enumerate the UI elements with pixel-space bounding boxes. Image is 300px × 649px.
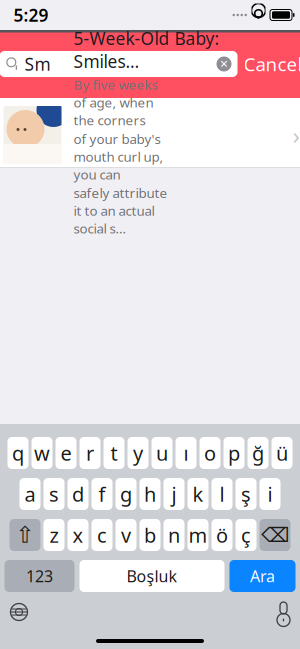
- button[interactable]: 123: [4, 560, 74, 592]
- staticText: a: [24, 481, 35, 507]
- button[interactable]: m: [187, 519, 208, 551]
- button[interactable]: ö: [211, 519, 232, 551]
- button[interactable]: i: [259, 478, 280, 510]
- button[interactable]: v: [115, 519, 136, 551]
- button[interactable]: t: [103, 437, 124, 469]
- button[interactable]: a: [19, 478, 40, 510]
- staticText: ›: [292, 119, 299, 151]
- staticText: ğ: [252, 440, 264, 466]
- button[interactable]: Ara: [229, 560, 295, 592]
- staticText: ⌫: [261, 524, 289, 546]
- staticText: d: [72, 481, 84, 507]
- staticText: 5:29: [13, 3, 48, 26]
- button[interactable]: f: [91, 478, 112, 510]
- button[interactable]: k: [187, 478, 208, 510]
- staticText: e: [60, 440, 71, 466]
- button[interactable]: b: [139, 519, 160, 551]
- staticText: safely attribute it to an actual social …: [73, 184, 167, 237]
- button[interactable]: ğ: [247, 437, 268, 469]
- staticText: r: [86, 440, 94, 466]
- button[interactable]: j: [163, 478, 184, 510]
- staticText: 5-Week-Old Baby: Smiles…: [73, 27, 219, 73]
- staticText: ü: [276, 440, 288, 466]
- button[interactable]: Clear text: [210, 51, 237, 77]
- staticText: Sm: [24, 52, 50, 75]
- staticText: b: [144, 522, 156, 548]
- button[interactable]: z: [43, 519, 64, 551]
- staticText: z: [49, 522, 58, 548]
- button[interactable]: r: [79, 437, 100, 469]
- staticText: Cancel: [243, 52, 300, 76]
- button[interactable]: 5-Week-Old Baby: Smiles…: [0, 98, 300, 168]
- staticText: ✕: [219, 58, 228, 70]
- staticText: o: [204, 440, 216, 466]
- staticText: f: [98, 481, 105, 507]
- button[interactable]: x: [67, 519, 88, 551]
- staticText: ⇧: [15, 522, 34, 548]
- button[interactable]: Next keyboard: [0, 596, 38, 628]
- staticText: x: [72, 522, 83, 548]
- button[interactable]: Cancel: [237, 49, 300, 79]
- staticText: of your baby's mouth curl up, you can: [73, 130, 163, 183]
- staticText: n: [168, 522, 180, 548]
- staticText: By five weeks of age, when the corners: [73, 76, 157, 129]
- button[interactable]: c: [91, 519, 112, 551]
- button[interactable]: p: [223, 437, 244, 469]
- button[interactable]: ü: [271, 437, 292, 469]
- button[interactable]: g: [115, 478, 136, 510]
- button[interactable]: Dictate: [266, 596, 300, 628]
- staticText: ı: [183, 440, 188, 466]
- button[interactable]: Boşluk: [79, 560, 224, 592]
- staticText: h: [144, 481, 156, 507]
- button[interactable]: q: [7, 437, 28, 469]
- button[interactable]: n: [163, 519, 184, 551]
- button[interactable]: ş: [235, 478, 256, 510]
- staticText: g: [120, 481, 132, 507]
- staticText: k: [192, 481, 203, 507]
- button[interactable]: Shift: [9, 519, 40, 551]
- staticText: ç: [241, 522, 251, 548]
- button[interactable]: ı: [175, 437, 196, 469]
- staticText: q: [12, 440, 24, 466]
- staticText: ş: [241, 481, 251, 507]
- staticText: j: [171, 481, 176, 507]
- staticText: ö: [216, 522, 228, 548]
- button[interactable]: o: [199, 437, 220, 469]
- staticText: l: [219, 481, 224, 507]
- staticText: s: [49, 481, 59, 507]
- button[interactable]: s: [43, 478, 64, 510]
- staticText: t: [110, 440, 117, 466]
- staticText: c: [97, 522, 107, 548]
- staticText: v: [121, 522, 131, 548]
- staticText: w: [34, 440, 50, 466]
- button[interactable]: d: [67, 478, 88, 510]
- staticText: Boşluk: [126, 565, 177, 587]
- staticText: y: [133, 440, 143, 466]
- button[interactable]: ç: [235, 519, 256, 551]
- button[interactable]: l: [211, 478, 232, 510]
- staticText: p: [228, 440, 240, 466]
- button[interactable]: y: [127, 437, 148, 469]
- button[interactable]: u: [151, 437, 172, 469]
- staticText: u: [156, 440, 168, 466]
- button[interactable]: Delete: [259, 519, 290, 551]
- staticText: m: [188, 522, 207, 548]
- button[interactable]: w: [31, 437, 52, 469]
- button[interactable]: h: [139, 478, 160, 510]
- staticText: Ara: [250, 565, 275, 587]
- staticText: 123: [26, 565, 53, 587]
- staticText: i: [267, 481, 272, 507]
- button[interactable]: e: [55, 437, 76, 469]
